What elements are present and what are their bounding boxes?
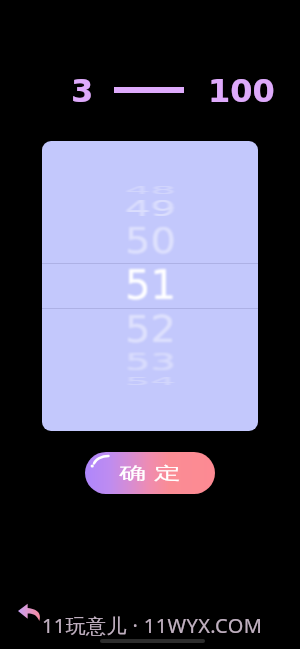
staticText: 确定 [115,463,185,484]
button[interactable]: 确定 [85,452,215,494]
staticText: 53 [125,349,176,376]
button[interactable]: Back [18,603,41,621]
staticText: 51 [125,262,176,309]
staticText: 49 [125,197,176,222]
button[interactable]: 100 [206,72,276,108]
staticText: 100 [208,72,275,108]
button[interactable]: 48 [42,141,258,431]
staticText: 3 [71,72,94,108]
staticText: 52 [125,307,176,352]
staticText: 11玩意儿 · 11WYX.COM [42,612,263,639]
staticText: 54 [125,375,176,388]
staticText: 50 [125,220,176,262]
staticText: 48 [125,184,176,196]
button[interactable]: 3 [66,72,98,108]
